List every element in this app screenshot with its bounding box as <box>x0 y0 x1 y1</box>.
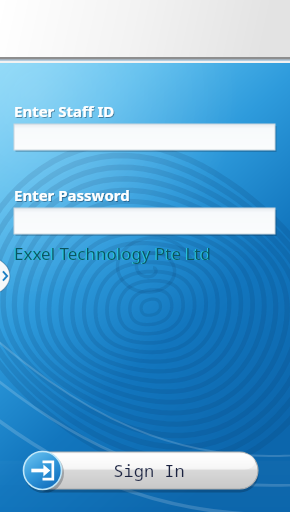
staticText: Enter Staff ID <box>15 102 116 122</box>
button[interactable]: Open side menu <box>0 255 13 297</box>
staticText: Exxel Technology Pte Ltd <box>14 242 211 265</box>
button[interactable] <box>14 124 275 150</box>
button[interactable]: Sign In <box>28 452 258 489</box>
button[interactable]: Sign In <box>21 449 64 492</box>
staticText: Exxel Technology Pte Ltd <box>13 242 210 265</box>
staticText: Sign In <box>113 459 185 482</box>
button[interactable] <box>14 208 275 234</box>
staticText: Enter Staff ID <box>14 101 115 121</box>
staticText: Enter Password <box>15 186 131 206</box>
staticText: Enter Password <box>14 185 130 205</box>
